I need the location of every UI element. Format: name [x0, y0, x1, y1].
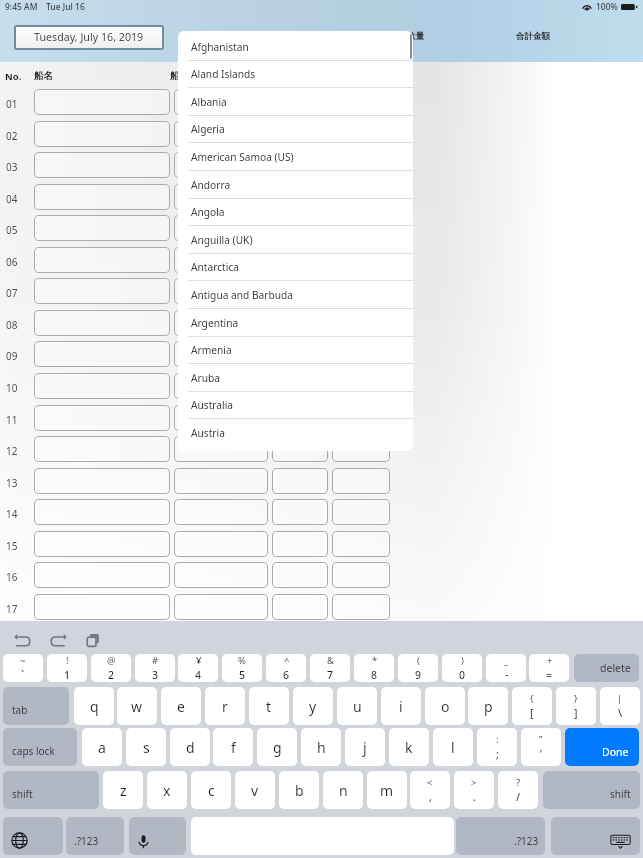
button[interactable] [272, 121, 328, 147]
button[interactable]: tab [3, 687, 69, 725]
button[interactable] [332, 121, 390, 147]
button[interactable]: Andorra [178, 171, 413, 199]
button[interactable] [272, 468, 328, 494]
button[interactable]: Done [565, 728, 639, 766]
button[interactable]: } [556, 687, 596, 725]
button[interactable] [332, 562, 390, 588]
button[interactable]: m [367, 771, 407, 809]
button[interactable]: x [147, 771, 187, 809]
button[interactable] [34, 89, 170, 115]
button[interactable]: + [529, 654, 569, 682]
button[interactable] [34, 436, 170, 462]
button[interactable]: l [433, 728, 473, 766]
button[interactable]: e [161, 687, 201, 725]
button[interactable]: s [126, 728, 166, 766]
button[interactable] [332, 184, 390, 210]
button[interactable]: q [74, 687, 114, 725]
button[interactable] [332, 405, 390, 431]
button[interactable]: o [425, 687, 465, 725]
button[interactable] [272, 278, 328, 304]
button[interactable]: u [337, 687, 377, 725]
button[interactable] [174, 184, 268, 210]
button[interactable] [34, 373, 170, 399]
button[interactable]: w [117, 687, 157, 725]
button[interactable] [34, 468, 170, 494]
button[interactable] [174, 499, 268, 525]
button[interactable] [34, 152, 170, 178]
button[interactable]: Hide keyboard [551, 817, 640, 855]
button[interactable] [34, 215, 170, 241]
button[interactable]: f [213, 728, 253, 766]
button[interactable]: k [389, 728, 429, 766]
button[interactable] [332, 152, 390, 178]
button[interactable]: z [103, 771, 143, 809]
button[interactable]: Aland Islands [178, 60, 413, 88]
button[interactable] [174, 468, 268, 494]
button[interactable]: n [323, 771, 363, 809]
button[interactable] [272, 562, 328, 588]
button[interactable]: .?123 [66, 817, 124, 855]
button[interactable] [272, 152, 328, 178]
button[interactable]: ” [521, 728, 561, 766]
button[interactable] [332, 436, 390, 462]
button[interactable] [34, 310, 170, 336]
button[interactable]: p [468, 687, 508, 725]
button[interactable]: delete [574, 654, 639, 682]
button[interactable]: j [345, 728, 385, 766]
button[interactable] [332, 594, 390, 620]
button[interactable] [272, 247, 328, 273]
button[interactable]: g [257, 728, 297, 766]
button[interactable]: Australia [178, 391, 413, 419]
button[interactable] [34, 247, 170, 273]
button[interactable] [332, 468, 390, 494]
button[interactable]: > [454, 771, 494, 809]
button[interactable]: ^ [266, 654, 306, 682]
button[interactable]: ? [498, 771, 538, 809]
button[interactable]: Dictation [129, 817, 186, 855]
button[interactable]: Argentina [178, 309, 413, 337]
button[interactable] [174, 152, 268, 178]
button[interactable]: * [354, 654, 394, 682]
button[interactable] [272, 436, 328, 462]
button[interactable] [272, 531, 328, 557]
button[interactable]: v [235, 771, 275, 809]
button[interactable]: Redo [48, 630, 69, 651]
button[interactable]: a [82, 728, 122, 766]
button[interactable] [332, 215, 390, 241]
button[interactable] [332, 499, 390, 525]
button[interactable]: y [293, 687, 333, 725]
button[interactable]: i [381, 687, 421, 725]
button[interactable] [332, 247, 390, 273]
button[interactable]: | [600, 687, 640, 725]
button[interactable]: c [191, 771, 231, 809]
button[interactable] [332, 373, 390, 399]
button[interactable] [34, 121, 170, 147]
button[interactable]: : [477, 728, 517, 766]
button[interactable] [174, 89, 268, 115]
button[interactable] [34, 341, 170, 367]
button[interactable]: h [301, 728, 341, 766]
button[interactable]: ! [47, 654, 87, 682]
button[interactable]: t [249, 687, 289, 725]
button[interactable] [174, 341, 268, 367]
button[interactable] [34, 184, 170, 210]
button[interactable]: Anguilla (UK) [178, 226, 413, 254]
button[interactable]: Austria [178, 419, 413, 447]
button[interactable] [174, 247, 268, 273]
button[interactable] [272, 405, 328, 431]
button[interactable] [174, 562, 268, 588]
button[interactable] [272, 373, 328, 399]
button[interactable] [174, 531, 268, 557]
button[interactable]: Albania [178, 88, 413, 116]
button[interactable]: Antigua and Barbuda [178, 281, 413, 309]
button[interactable]: Algeria [178, 115, 413, 143]
button[interactable] [174, 594, 268, 620]
button[interactable]: b [279, 771, 319, 809]
button[interactable] [34, 499, 170, 525]
button[interactable] [174, 310, 268, 336]
button[interactable]: Antarctica [178, 253, 413, 281]
